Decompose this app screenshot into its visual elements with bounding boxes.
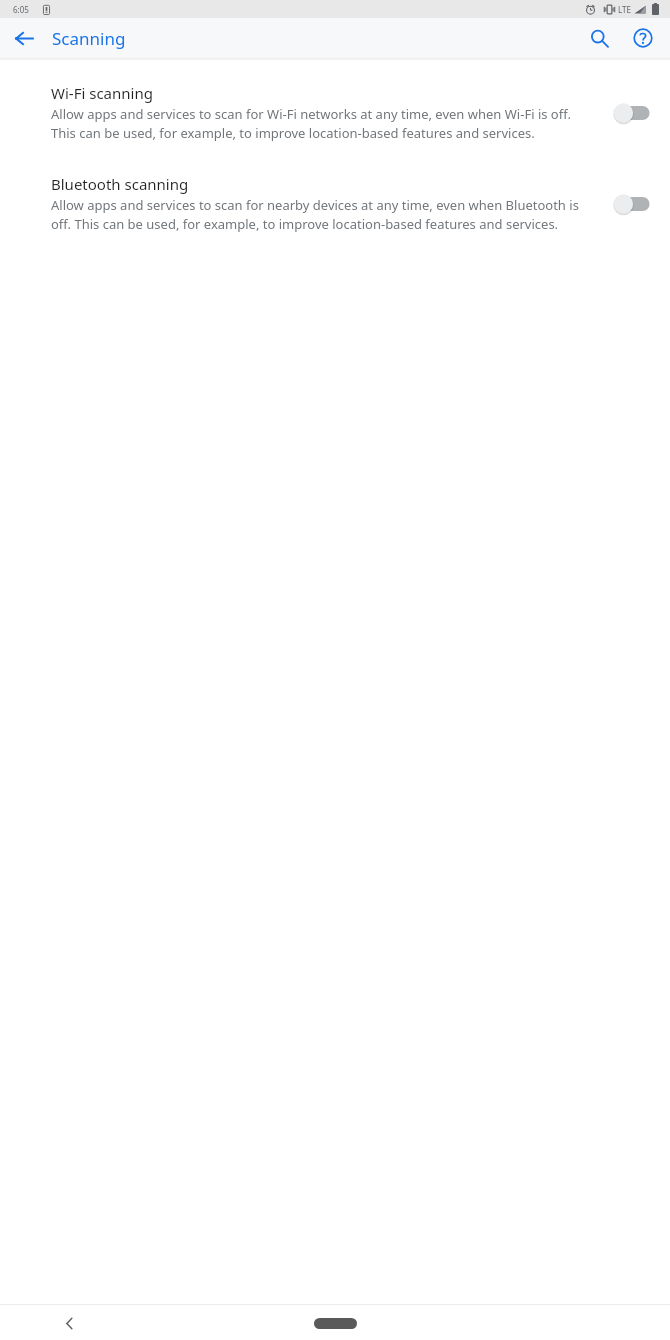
button[interactable]: Wi-Fi scanning toggle bbox=[610, 99, 656, 127]
staticText: Bluetooth scanning bbox=[51, 174, 189, 194]
staticText: Allow apps and services to scan for near… bbox=[51, 196, 588, 233]
button[interactable]: Bluetooth scanning bbox=[0, 170, 670, 237]
button[interactable]: Help bbox=[624, 19, 662, 57]
button[interactable]: Home bbox=[305, 1310, 365, 1336]
staticText: Allow apps and services to scan for Wi-F… bbox=[51, 105, 588, 142]
staticText: LTE bbox=[618, 4, 631, 15]
button[interactable]: Back bbox=[6, 20, 42, 56]
staticText: Scanning bbox=[52, 27, 126, 50]
button[interactable]: Back bbox=[52, 1306, 86, 1340]
staticText: Wi-Fi scanning bbox=[51, 83, 153, 103]
button[interactable]: Bluetooth scanning toggle bbox=[610, 190, 656, 218]
button[interactable]: Search bbox=[580, 19, 618, 57]
button[interactable]: Wi-Fi scanning bbox=[0, 79, 670, 146]
staticText: 6:05 bbox=[13, 4, 29, 15]
